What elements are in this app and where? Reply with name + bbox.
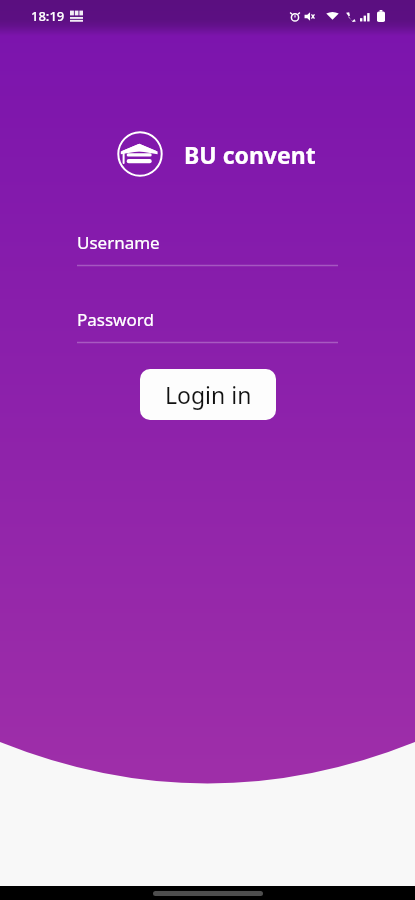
staticText: Login in xyxy=(165,379,252,410)
button[interactable]: Username xyxy=(77,231,338,267)
staticText: BU convent xyxy=(184,139,316,170)
staticText: Username xyxy=(77,231,160,254)
staticText: Password xyxy=(77,308,154,331)
button[interactable]: Password xyxy=(77,308,338,344)
button[interactable]: Login in xyxy=(140,369,276,420)
other: BU convent logo xyxy=(117,131,163,177)
staticText: 18:19 xyxy=(31,7,65,25)
